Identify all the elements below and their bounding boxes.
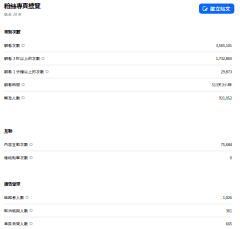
- staticText: 廣告受眾: [4, 180, 20, 187]
- button[interactable]: 取消追蹤人數: [0, 204, 240, 217]
- staticText: 取消追蹤人數: [4, 208, 28, 213]
- button[interactable]: 觀看 1 分鐘以上的次數: [0, 65, 240, 78]
- staticText: 觀看次數: [4, 42, 20, 48]
- button[interactable]: 觀看 3 秒以上的次數: [0, 52, 240, 65]
- staticText: 3,565,101: [216, 42, 232, 48]
- button[interactable]: 觸及人數: [0, 91, 240, 105]
- button[interactable]: 追蹤者人數: [0, 191, 240, 204]
- staticText: 0: [230, 155, 232, 160]
- staticText: 瀏覽次數: [4, 28, 20, 35]
- staticText: 觸及人數: [4, 95, 20, 100]
- staticText: 過去 28 天: [4, 11, 22, 17]
- staticText: 連結點擊次數: [4, 155, 28, 160]
- button[interactable]: 建立貼文: [199, 3, 234, 14]
- staticText: 內容互動次數: [4, 142, 28, 147]
- staticText: 建立貼文: [210, 5, 230, 12]
- staticText: 29,873: [221, 69, 232, 74]
- button[interactable]: 觀看時間: [0, 78, 240, 91]
- staticText: 專頁瀏覽人數: [4, 221, 28, 226]
- staticText: 1,732,860: [216, 56, 232, 61]
- staticText: 665: [226, 221, 232, 226]
- staticText: 75,684: [221, 142, 232, 147]
- staticText: 觀看時間: [4, 82, 20, 87]
- staticText: 921,052: [219, 95, 232, 100]
- staticText: 粉絲專頁總覽: [4, 1, 40, 10]
- staticText: 觀看 3 秒以上的次數: [4, 56, 40, 61]
- button[interactable]: 觀看次數: [0, 39, 240, 52]
- staticText: 追蹤者人數: [4, 195, 24, 200]
- button[interactable]: 內容互動次數: [0, 138, 240, 151]
- staticText: 1,026: [223, 195, 232, 200]
- button[interactable]: 專頁瀏覽人數: [0, 217, 240, 229]
- staticText: 361: [226, 208, 232, 213]
- staticText: 觀看 1 分鐘以上的次數: [4, 69, 44, 74]
- staticText: 互動: [4, 128, 12, 134]
- staticText: 513天3小時: [212, 82, 232, 87]
- button[interactable]: 連結點擊次數: [0, 151, 240, 164]
